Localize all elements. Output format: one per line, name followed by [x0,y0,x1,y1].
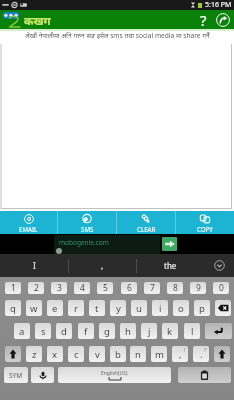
staticText: 0 [219,282,224,294]
button[interactable]: Shift [214,346,230,362]
staticText: EMAIL [19,225,38,233]
button[interactable]: I [0,254,68,277]
button[interactable]: u [131,300,147,316]
staticText: ! [184,347,186,354]
staticText: 3 [57,282,62,294]
button[interactable]: o [173,300,189,316]
staticText: u [136,302,142,315]
staticText: i [159,302,162,315]
button[interactable]: l [184,323,200,339]
button[interactable]: CLEAR [117,211,175,234]
button[interactable]: 9 [190,282,206,294]
button[interactable]: a [14,323,30,339]
staticText: CLEAR [137,225,156,233]
staticText: e [52,302,58,315]
staticText: h [125,325,131,338]
staticText: 5 [103,282,108,294]
staticText: c [74,348,79,361]
button[interactable]: . [193,346,209,362]
button[interactable]: y [110,300,126,316]
staticText: 1 [11,282,16,294]
button[interactable]: COPY [176,211,234,234]
button[interactable]: Open ad [162,237,177,251]
staticText: the [164,260,177,271]
button[interactable]: Space [58,367,171,383]
button[interactable]: p [194,300,210,316]
button[interactable]: 6 [121,282,137,294]
staticText: t [95,302,99,315]
staticText: k [167,325,173,338]
button[interactable]: 3 [51,282,67,294]
button[interactable]: b [110,346,126,362]
button[interactable]: z [26,346,42,362]
staticText: w [30,302,38,315]
button[interactable]: d [56,323,72,339]
button[interactable]: x [47,346,63,362]
staticText: mobogenie.com [59,238,109,247]
button[interactable]: SMS [58,211,116,234]
staticText: y [116,302,121,315]
staticText: g [104,325,110,338]
button[interactable]: EMAIL [0,211,57,234]
button[interactable]: More suggestions [204,254,234,277]
button[interactable]: SYM [4,367,28,383]
staticText: , [179,348,182,361]
staticText: , [101,260,104,271]
button[interactable]: f [78,323,94,339]
button[interactable]: w [26,300,42,316]
button[interactable]: Clipboard [178,367,231,383]
staticText: n [135,348,141,361]
button[interactable]: 1 [5,282,21,294]
staticText: p [199,302,205,315]
staticText: 7 [150,282,155,294]
button[interactable]: 4 [74,282,90,294]
button[interactable]: k [162,323,178,339]
staticText: SMS [81,225,94,233]
staticText: o [178,302,184,315]
button[interactable]: 0 [213,282,229,294]
staticText: 4 [80,282,85,294]
staticText: कखग [24,13,51,29]
staticText: लेखौं नेपालीमा अनि गरुन सङ इमेल sms तथा … [25,31,210,40]
staticText: b [115,348,121,361]
button[interactable]: the [137,254,204,277]
staticText: COPY [197,225,213,233]
button[interactable]: mobogenie.com [54,235,160,254]
staticText: m [155,348,164,361]
button[interactable]: t [89,300,105,316]
button[interactable]: , [172,346,188,362]
staticText: r [74,302,78,315]
button[interactable]: m [151,346,167,362]
button[interactable]: 7 [144,282,160,294]
button[interactable]: 2 [28,282,44,294]
staticText: v [95,348,100,361]
button[interactable]: Voice input [31,367,54,383]
button[interactable]: e [47,300,63,316]
button[interactable]: i [152,300,168,316]
button[interactable]: , [69,254,136,277]
button[interactable]: h [120,323,136,339]
button[interactable]: n [130,346,146,362]
staticText: d [61,325,67,338]
button[interactable]: Help [196,10,211,29]
button[interactable]: g [99,323,115,339]
button[interactable]: q [5,300,21,316]
staticText: 5:16 PM [205,0,232,10]
button[interactable]: s [35,323,51,339]
button[interactable]: 5 [97,282,113,294]
staticText: 8 [173,282,178,294]
button[interactable]: c [68,346,84,362]
staticText: SYM [9,371,23,380]
button[interactable]: Enter [205,323,232,339]
button[interactable]: v [89,346,105,362]
button[interactable]: 8 [167,282,183,294]
staticText: z [32,348,37,361]
button[interactable]: r [68,300,84,316]
button[interactable]: Backspace [215,300,231,316]
staticText: q [10,302,16,315]
staticText: a [19,325,25,338]
button[interactable]: Shift [5,346,21,362]
button[interactable]: j [141,323,157,339]
button[interactable]: Share [214,10,231,29]
staticText: j [148,325,151,338]
